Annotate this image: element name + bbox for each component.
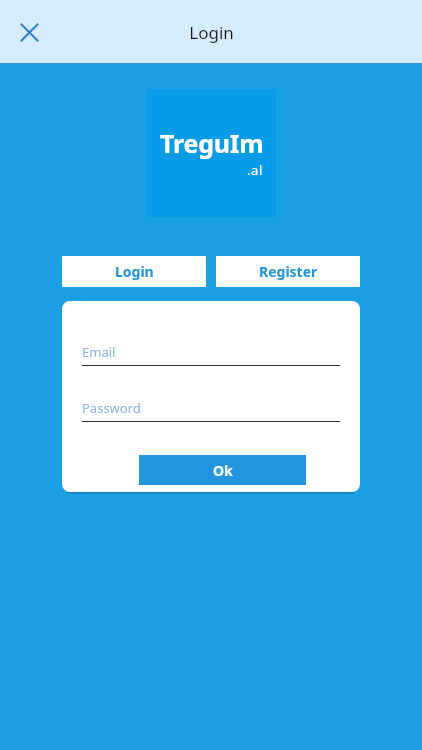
staticText: Register (259, 262, 318, 281)
staticText: Email (82, 343, 116, 361)
staticText: .al (247, 161, 263, 179)
button[interactable]: Email (82, 343, 340, 366)
button[interactable]: Password (82, 399, 340, 422)
button[interactable]: Register (216, 256, 360, 287)
button[interactable]: Close (9, 12, 49, 52)
button[interactable]: Ok (139, 455, 306, 485)
staticText: Login (189, 21, 234, 44)
staticText: TreguIm (160, 126, 264, 160)
staticText: Ok (213, 461, 233, 480)
staticText: Password (82, 399, 141, 417)
staticText: Login (115, 262, 154, 281)
button[interactable]: Login (62, 256, 206, 287)
